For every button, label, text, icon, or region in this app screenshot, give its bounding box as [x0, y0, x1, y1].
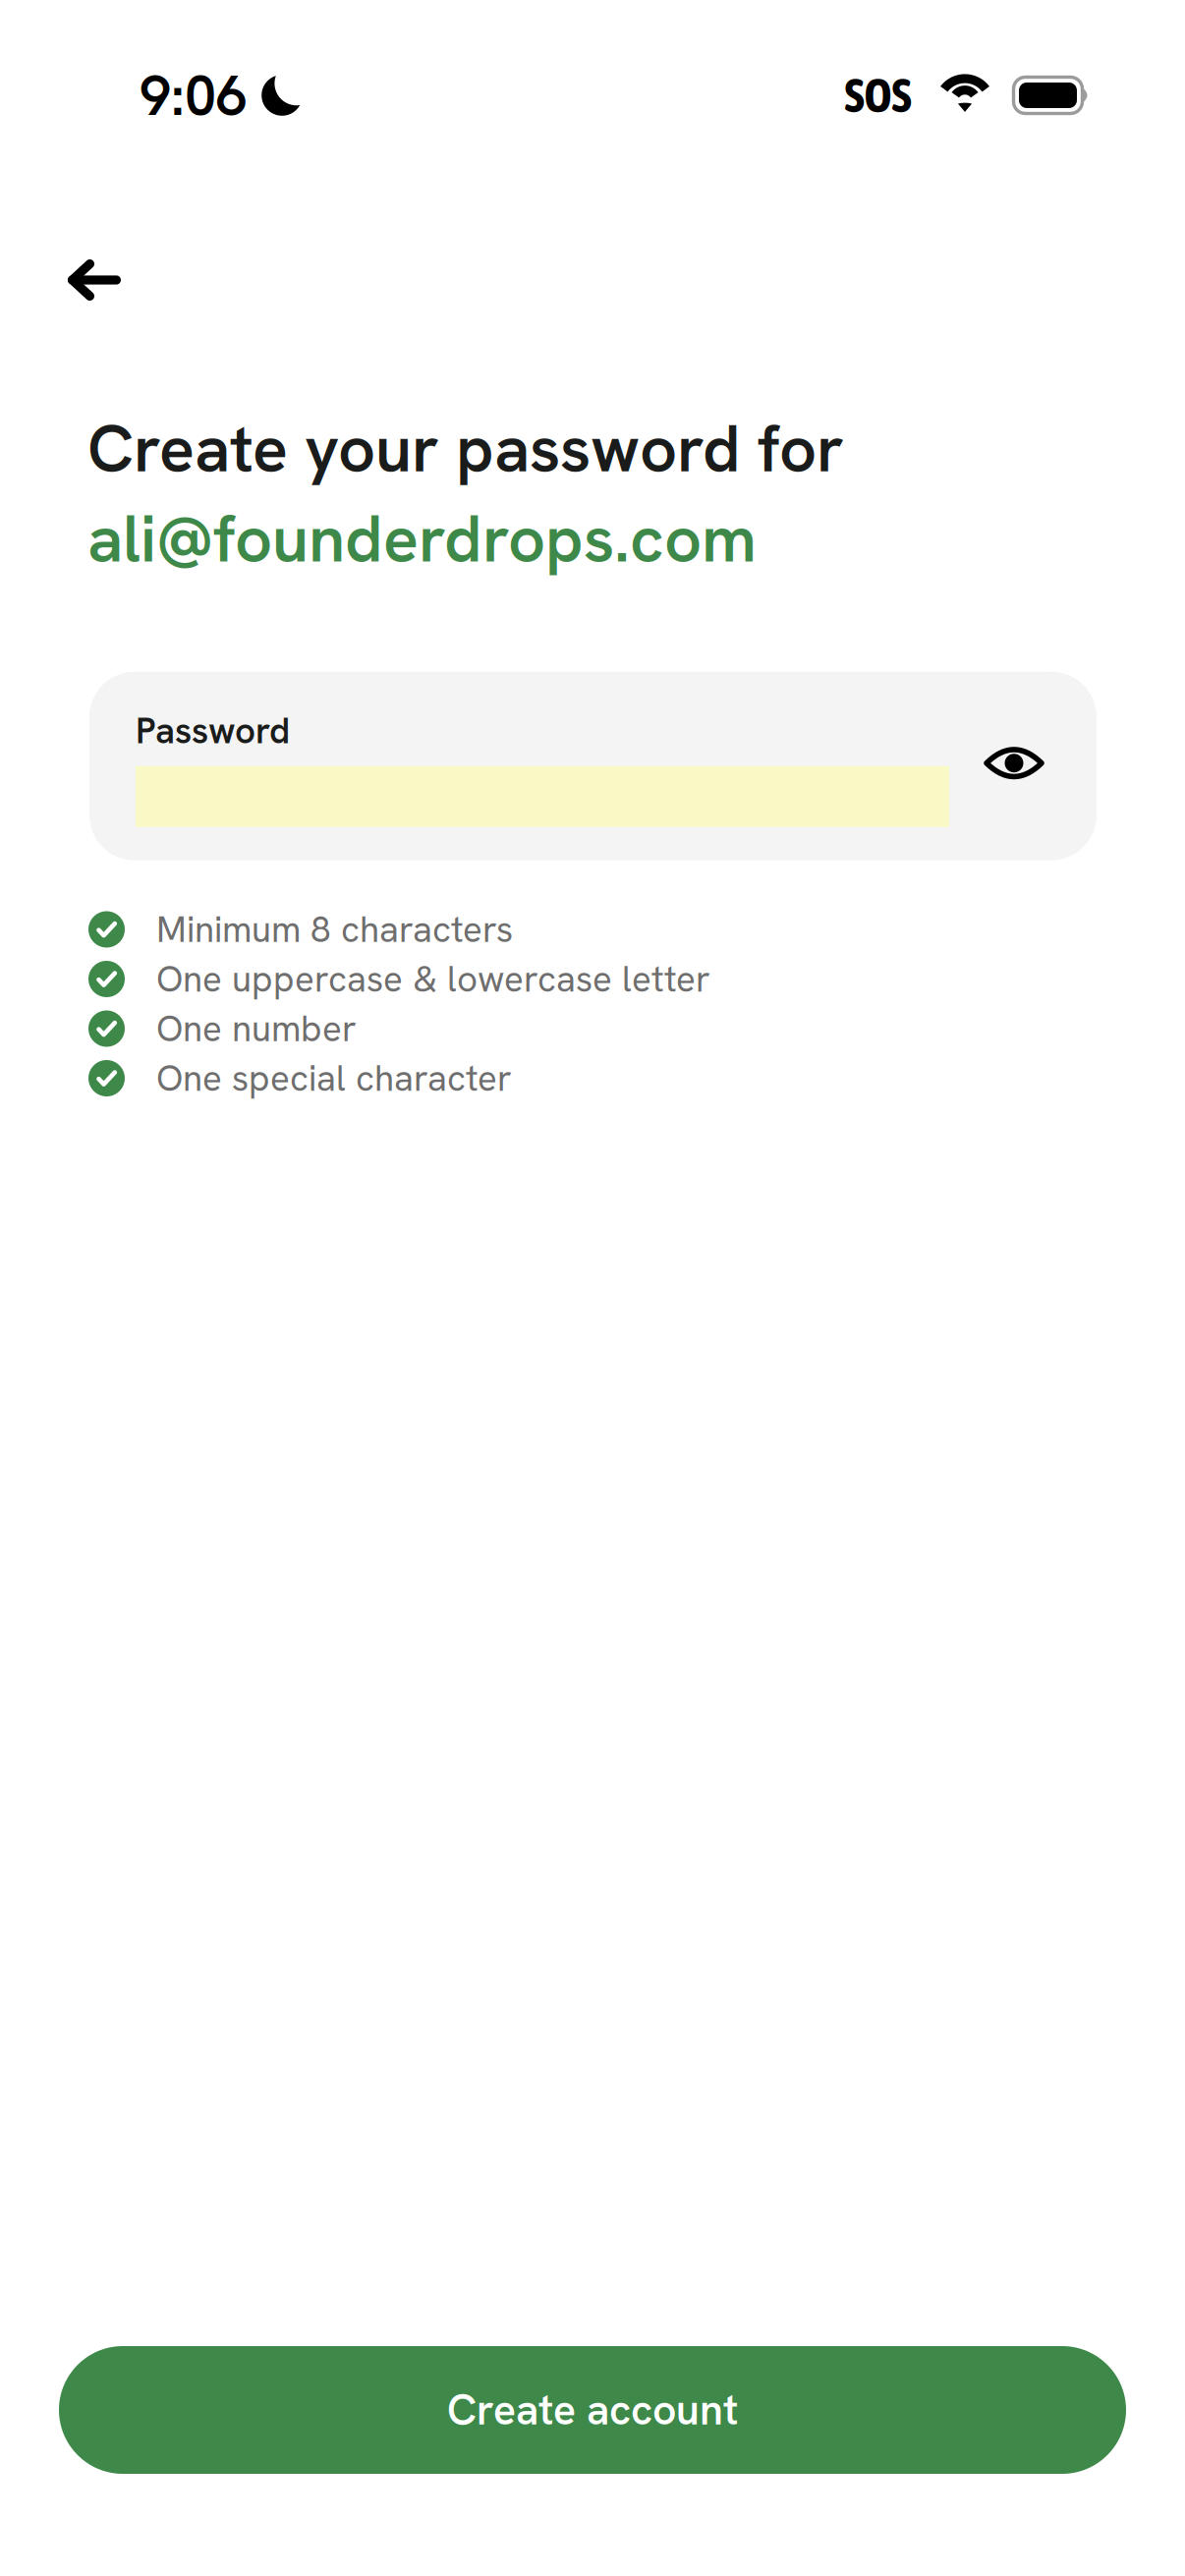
- staticText: SOS: [845, 68, 911, 122]
- staticText: Minimum 8 characters: [156, 906, 513, 953]
- staticText: 9:06: [140, 59, 248, 132]
- staticText: One special character: [156, 1055, 512, 1102]
- staticText: One uppercase & lowercase letter: [156, 956, 710, 1002]
- staticText: Create account: [447, 2383, 738, 2437]
- button[interactable]: Show password: [967, 716, 1061, 810]
- staticText: ali@founderdrops.com: [87, 496, 757, 581]
- staticText: Password: [136, 707, 290, 754]
- button[interactable]: Create account: [59, 2346, 1126, 2474]
- staticText: One number: [156, 1005, 357, 1052]
- button[interactable]: Back: [0, 234, 148, 326]
- staticText: Create your password for: [87, 406, 844, 491]
